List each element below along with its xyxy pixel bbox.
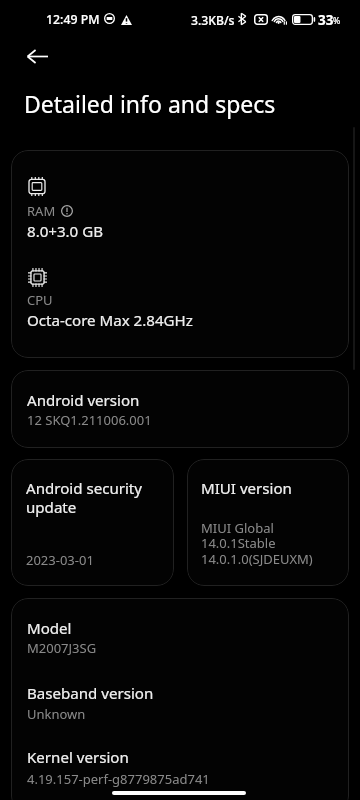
staticText: Detailed info and specs [24, 88, 276, 119]
staticText: 2023-03-01 [26, 551, 94, 569]
staticText: Kernel version [27, 747, 129, 768]
staticText: M2007J3SG [27, 639, 97, 657]
staticText: Unknown [27, 705, 86, 723]
button[interactable]: Back [12, 40, 60, 72]
staticText: RAM [27, 202, 56, 220]
staticText: 3.3KB/s [191, 12, 235, 29]
staticText: MIUI version [201, 478, 292, 499]
staticText: 8.0+3.0 GB [27, 221, 103, 242]
staticText: Baseband version [27, 683, 154, 704]
staticText: 12 SKQ1.211006.001 [27, 411, 152, 429]
staticText: CPU [27, 291, 53, 309]
staticText: Octa-core Max 2.84GHz [27, 310, 193, 331]
staticText: MIUI Global 14.0.1Stable 14.0.1.0(SJDEUX… [201, 519, 313, 568]
staticText: Android version [27, 390, 140, 411]
staticText: 33 [318, 11, 334, 29]
staticText: 12:49 PM [46, 11, 100, 28]
staticText: Android security update [26, 478, 154, 517]
staticText: Model [27, 618, 72, 639]
staticText: % [333, 15, 341, 27]
staticText: 4.19.157-perf-g8779875ad741 [27, 770, 210, 788]
